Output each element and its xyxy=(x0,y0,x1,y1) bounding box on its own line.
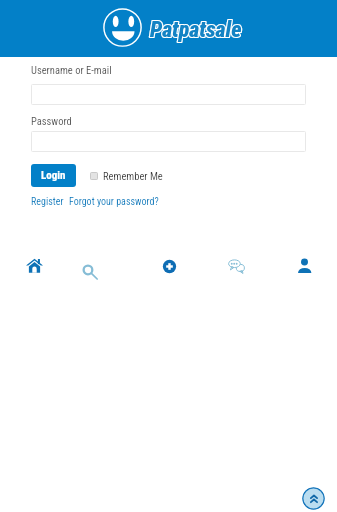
staticText: Password xyxy=(31,115,72,127)
button[interactable]: Remember Me xyxy=(90,164,163,187)
button[interactable]: Search xyxy=(76,257,102,283)
staticText: Patpatsale xyxy=(150,17,242,43)
button[interactable]: Profile xyxy=(291,252,317,278)
button[interactable]: Home xyxy=(21,252,47,278)
button[interactable]: Forgot your password? xyxy=(69,196,159,208)
button[interactable]: Messages xyxy=(223,252,249,278)
button[interactable] xyxy=(31,84,306,105)
button[interactable]: Register xyxy=(31,196,64,208)
staticText: Username or E-mail xyxy=(31,64,112,76)
button[interactable]: Login xyxy=(31,164,76,187)
button[interactable] xyxy=(31,131,306,152)
button[interactable]: Post xyxy=(156,253,182,279)
staticText: Patpatsale xyxy=(150,17,242,43)
staticText: Remember Me xyxy=(103,170,163,182)
button[interactable]: Scroll to top xyxy=(302,487,325,510)
staticText: Login xyxy=(41,169,66,182)
